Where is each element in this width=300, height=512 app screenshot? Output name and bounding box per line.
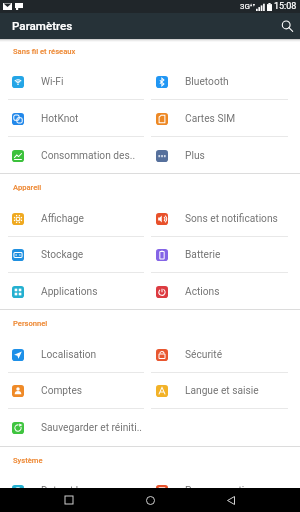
staticText: Sauvegarder et réiniti.. [41, 422, 143, 434]
button[interactable]: Cartes SIM [144, 100, 300, 137]
staticText: Personnel [13, 319, 48, 328]
button[interactable]: Sécurité [144, 337, 300, 373]
button[interactable]: Affichage [0, 201, 144, 237]
staticText: Plus [185, 150, 205, 162]
button[interactable]: Programmation [144, 473, 300, 509]
button[interactable]: Batterie [144, 237, 300, 273]
button[interactable]: Sauvegarder et réiniti.. [0, 409, 144, 447]
staticText: Batterie [185, 249, 221, 261]
button[interactable]: Applications [0, 273, 144, 310]
staticText: HotKnot [41, 113, 79, 125]
staticText: Wi-Fi [41, 76, 64, 88]
staticText: 15:08 [274, 1, 297, 12]
staticText: Date et heure [41, 485, 102, 497]
staticText: Actions [185, 286, 220, 298]
staticText: Appareil [13, 183, 42, 192]
button[interactable]: Wi-Fi [0, 64, 144, 100]
staticText: Applications [41, 286, 98, 298]
button[interactable]: Date et heure [0, 473, 144, 509]
button[interactable]: Localisation [0, 337, 144, 373]
button[interactable]: Search [274, 13, 300, 39]
button[interactable]: Actions [144, 273, 300, 310]
staticText: Localisation [41, 349, 97, 361]
staticText: Paramètres [12, 19, 73, 33]
button[interactable]: Plus [144, 137, 300, 174]
button[interactable]: Stockage [0, 237, 144, 273]
staticText: Sons et notifications [185, 213, 278, 225]
staticText: Bluetooth [185, 76, 229, 88]
button[interactable]: Langue et saisie [144, 373, 300, 409]
staticText: Système [13, 456, 43, 465]
button[interactable]: Consommation des.. [0, 137, 144, 174]
staticText: Stockage [41, 249, 84, 261]
staticText: Programmation [185, 485, 256, 497]
button[interactable]: Sons et notifications [144, 201, 300, 237]
staticText: Cartes SIM [185, 113, 236, 125]
staticText: 3G [240, 2, 250, 11]
button[interactable]: Bluetooth [144, 64, 300, 100]
staticText: Sans fil et réseaux [13, 47, 76, 56]
staticText: Consommation des.. [41, 150, 136, 162]
staticText: Affichage [41, 213, 84, 225]
button[interactable]: HotKnot [0, 100, 144, 137]
staticText: Sécurité [185, 349, 223, 361]
button[interactable]: Recent apps [57, 488, 81, 512]
staticText: Comptes [41, 385, 83, 397]
button[interactable]: Back [219, 488, 243, 512]
staticText: Langue et saisie [185, 385, 259, 397]
button[interactable]: Home [138, 488, 162, 512]
button[interactable]: Comptes [0, 373, 144, 409]
